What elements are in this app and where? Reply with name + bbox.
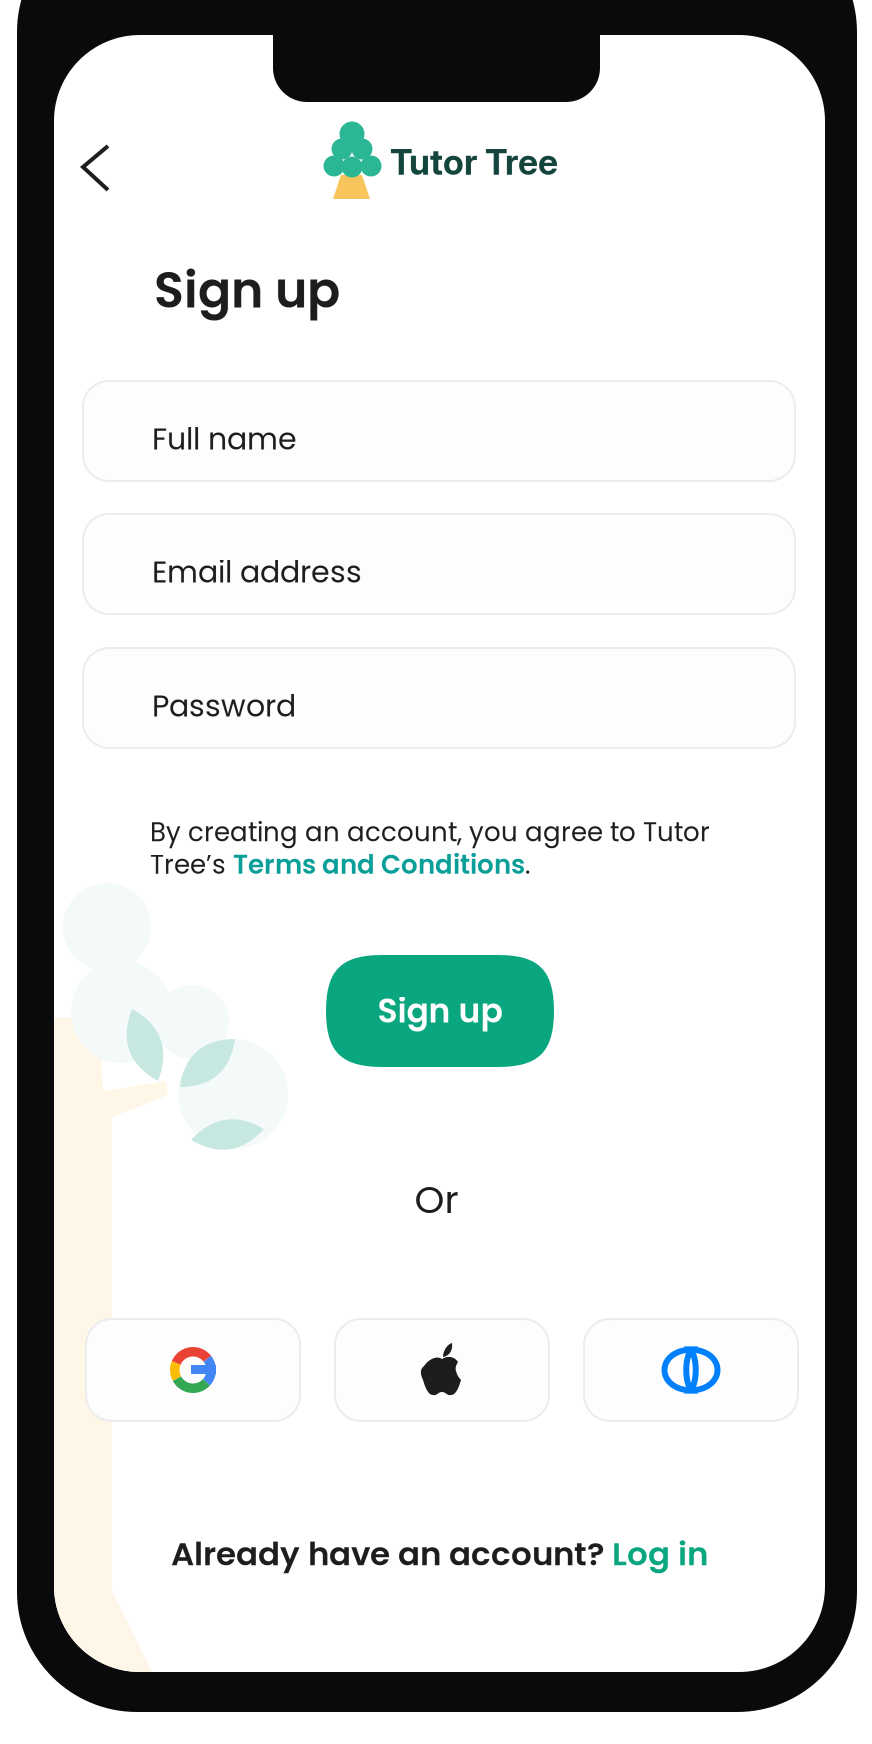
staticText: Tree’s bbox=[150, 846, 233, 883]
staticText: Sign up bbox=[154, 256, 340, 325]
button[interactable]: Sign up with Google bbox=[86, 1319, 300, 1421]
staticText: Already have an account? bbox=[171, 1531, 612, 1576]
button[interactable]: Back bbox=[59, 122, 132, 214]
staticText: Sign up bbox=[377, 988, 502, 1034]
staticText: Email address bbox=[152, 551, 362, 593]
button[interactable]: Password bbox=[83, 648, 795, 748]
button[interactable]: Sign up bbox=[326, 955, 554, 1067]
staticText: . bbox=[525, 846, 530, 883]
button[interactable]: Already have an account? bbox=[171, 1531, 708, 1576]
staticText: Tutor Tree bbox=[390, 141, 558, 183]
staticText: Password bbox=[152, 685, 296, 727]
button[interactable]: Terms and Conditions bbox=[233, 846, 525, 883]
button[interactable]: Full name bbox=[83, 381, 795, 481]
button[interactable]: Email address bbox=[83, 514, 795, 614]
staticText: By creating an account, you agree to Tut… bbox=[150, 814, 710, 850]
staticText: Or bbox=[414, 1173, 458, 1226]
button[interactable]: Sign up with Apple bbox=[335, 1319, 549, 1421]
staticText: Full name bbox=[152, 418, 297, 460]
staticText: Log in bbox=[612, 1531, 708, 1576]
staticText: Terms and Conditions bbox=[233, 846, 525, 883]
button[interactable]: Sign up with Meta bbox=[584, 1319, 798, 1421]
